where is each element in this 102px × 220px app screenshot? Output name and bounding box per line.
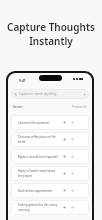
staticText: Capture Thoughts <box>7 20 95 34</box>
staticText: Instantly <box>29 34 73 48</box>
button[interactable]: Book dentist appointment <box>11 183 89 198</box>
button[interactable]: That new coffee place on 5th street <box>11 132 89 147</box>
staticText: Call mom this weekend <box>18 121 49 125</box>
button[interactable]: Maybe I should learn Spanish? <box>11 149 89 164</box>
staticText: Maybe I should learn Spanish? <box>18 155 58 159</box>
staticText: Feeling grateful for this sunny morning <box>18 203 58 212</box>
button[interactable]: Feeling grateful for this sunny morning <box>11 200 89 215</box>
staticText: Previous 30 <box>72 105 87 109</box>
staticText: 9:41 <box>19 78 26 83</box>
staticText: That new coffee place on 5th street <box>18 135 58 144</box>
button[interactable]: Capture or search anything... <box>11 89 89 99</box>
staticText: Recent <box>13 105 23 109</box>
staticText: Reply to Sarah's email about the project <box>18 169 58 178</box>
button[interactable]: Reply to Sarah's email about the project <box>11 166 89 181</box>
button[interactable]: Call mom this weekend <box>11 115 89 130</box>
staticText: Book dentist appointment <box>18 189 53 193</box>
staticText: Capture or search anything... <box>19 92 59 96</box>
